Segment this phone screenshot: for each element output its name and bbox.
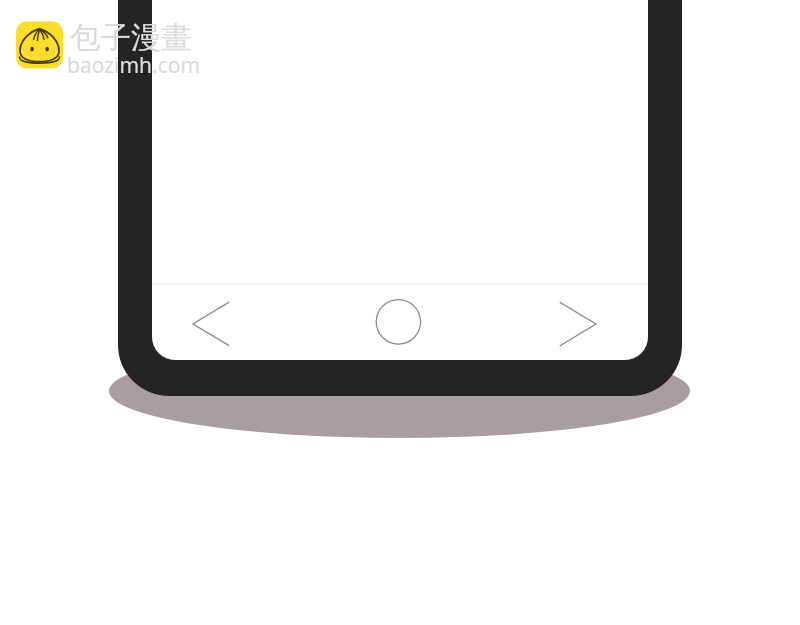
button[interactable]: Home	[370, 293, 428, 351]
button[interactable]: Forward	[550, 292, 608, 354]
staticText: baozimh.com	[67, 51, 201, 80]
staticText: 包子漫畫	[70, 19, 192, 57]
button[interactable]: Back	[182, 292, 238, 354]
